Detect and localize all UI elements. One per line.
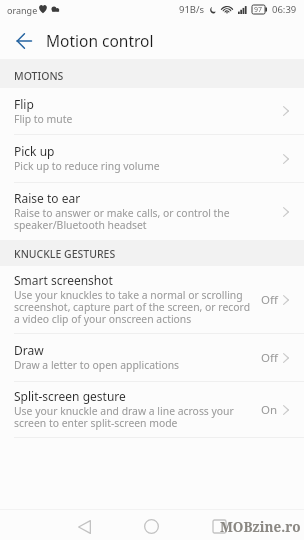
button[interactable]: Split-screen gesture <box>0 382 304 437</box>
staticText: Motion control <box>46 30 154 51</box>
staticText: Use your knuckle and draw a line across … <box>14 405 234 417</box>
staticText: On <box>261 402 278 418</box>
button[interactable]: Draw <box>0 334 304 381</box>
staticText: 06:39 <box>272 3 297 16</box>
staticText: Split-screen gesture <box>14 388 126 405</box>
staticText: Smart screenshot <box>14 272 113 289</box>
staticText: Off <box>261 292 278 308</box>
button[interactable]: Home <box>137 512 166 540</box>
staticText: Raise to ear <box>14 190 81 207</box>
staticText: Raise to answer or make calls, or contro… <box>14 207 230 219</box>
button[interactable]: Flip <box>0 88 304 134</box>
staticText: orange <box>7 4 38 16</box>
staticText: 97 <box>254 5 263 14</box>
staticText: Off <box>261 350 278 366</box>
staticText: KNUCKLE GESTURES <box>14 247 116 261</box>
staticText: Draw <box>14 342 44 359</box>
staticText: Draw a letter to open applications <box>14 359 180 371</box>
staticText: Flip to mute <box>14 113 73 125</box>
staticText: a video clip of your onscreen actions <box>14 313 192 325</box>
button[interactable]: Smart screenshot <box>0 266 304 333</box>
staticText: screen to enter split-screen mode <box>14 417 178 429</box>
staticText: Use your knuckles to take a normal or sc… <box>14 289 243 301</box>
staticText: screenshot, capture part of the screen, … <box>14 301 251 313</box>
button[interactable]: Recent apps <box>205 512 234 540</box>
staticText: speaker/Bluetooth headset <box>14 219 147 231</box>
staticText: Pick up <box>14 143 55 160</box>
staticText: MOBzine.ro <box>220 518 301 536</box>
staticText: Flip <box>14 96 34 113</box>
staticText: 91B/s <box>179 3 205 16</box>
staticText: MOTIONS <box>14 69 64 83</box>
button[interactable]: Pick up <box>0 135 304 182</box>
staticText: Pick up to reduce ring volume <box>14 160 160 172</box>
button[interactable]: Back <box>5 21 43 61</box>
button[interactable]: Raise to ear <box>0 183 304 240</box>
button[interactable]: Back <box>70 512 99 540</box>
